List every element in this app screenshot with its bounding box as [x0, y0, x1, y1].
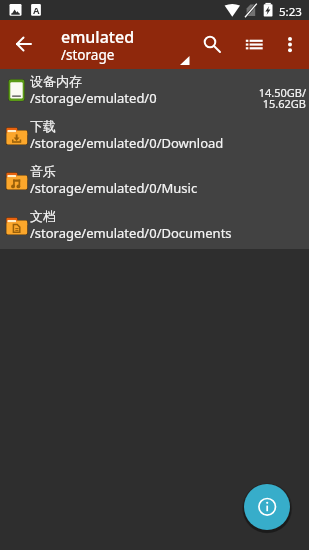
staticText: 下载	[30, 118, 56, 134]
staticText: /storage	[61, 46, 115, 64]
button[interactable]: 文档	[0, 204, 309, 249]
staticText: /storage/emulated/0/Music	[30, 179, 198, 197]
staticText: emulated	[61, 26, 135, 48]
staticText: 5:23	[279, 4, 302, 20]
button[interactable]: 设备内存	[0, 69, 309, 114]
button[interactable]: 下载	[0, 114, 309, 159]
staticText: 音乐	[30, 163, 56, 179]
staticText: 设备内存	[30, 73, 82, 89]
staticText: 文档	[30, 208, 56, 224]
button[interactable]: View mode	[238, 29, 270, 61]
staticText: /storage/emulated/0	[30, 89, 157, 107]
staticText: /storage/emulated/0/Download	[30, 134, 224, 152]
button[interactable]: Back	[8, 28, 40, 60]
button[interactable]: Info	[244, 484, 290, 530]
button[interactable]: More options	[274, 29, 306, 61]
staticText: A	[33, 4, 40, 17]
button[interactable]: 音乐	[0, 159, 309, 204]
staticText: /storage/emulated/0/Documents	[30, 224, 232, 242]
button[interactable]: Search	[194, 29, 226, 61]
staticText: 14.50GB/ 15.62GB	[0, 85, 306, 112]
